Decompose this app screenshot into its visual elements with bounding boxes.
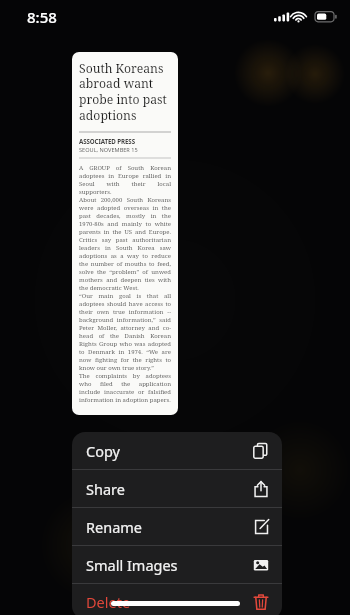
button[interactable]: Delete <box>72 584 282 615</box>
other: Small Images <box>252 556 270 574</box>
other: Copy <box>252 442 270 460</box>
other: Share <box>252 480 270 498</box>
staticText: “Our main goal is that all adoptees shou… <box>79 292 171 372</box>
button[interactable]: Small Images <box>72 546 282 583</box>
staticText: Delete <box>86 592 131 612</box>
button[interactable]: South Koreans abroad want probe into pas… <box>72 52 178 415</box>
button[interactable]: Copy <box>72 432 282 469</box>
staticText: Share <box>86 479 125 499</box>
staticText: A GROUP of South Korean adoptees in Euro… <box>79 164 171 196</box>
staticText: ASSOCIATED PRESS <box>79 137 135 145</box>
other: Rename <box>252 518 270 536</box>
staticText: The complaints by adoptees who filed the… <box>79 372 171 404</box>
staticText: Small Images <box>86 555 178 575</box>
staticText: 8:58 <box>27 7 57 27</box>
staticText: SEOUL, NOVEMBER 15 <box>79 146 138 154</box>
staticText: South Koreans abroad want probe into pas… <box>79 60 171 124</box>
other: Delete <box>252 593 270 611</box>
button[interactable]: Share <box>72 470 282 507</box>
staticText: Rename <box>86 517 143 537</box>
staticText: Copy <box>86 441 120 461</box>
staticText: About 200,000 South Koreans were adopted… <box>79 196 171 292</box>
button[interactable]: Rename <box>72 508 282 545</box>
